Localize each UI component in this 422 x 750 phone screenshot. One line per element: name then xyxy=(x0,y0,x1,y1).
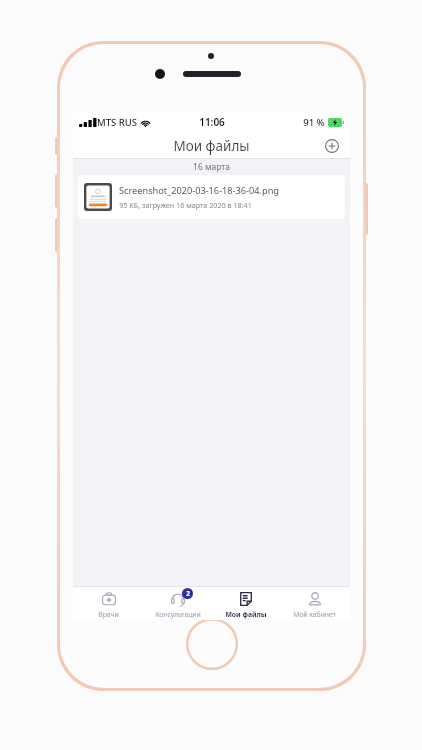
staticText: MTS RUS xyxy=(97,116,137,129)
staticText: Screenshot_2020-03-16-18-36-04.png xyxy=(119,184,279,197)
staticText: Мой кабинет xyxy=(293,610,336,619)
button[interactable]: Добавить файл xyxy=(320,134,344,158)
button[interactable]: Screenshot_2020-03-16-18-36-04.png xyxy=(78,175,345,219)
button[interactable]: 2 xyxy=(144,588,211,620)
button[interactable]: Мои файлы xyxy=(212,588,279,620)
staticText: 11:06 xyxy=(199,115,225,129)
staticText: 2 xyxy=(186,589,190,598)
staticText: 91 % xyxy=(303,116,325,129)
staticText: Консультации xyxy=(155,610,201,619)
staticText: Мои файлы xyxy=(225,610,267,619)
button[interactable]: Мой кабинет xyxy=(281,588,348,620)
staticText: Мои файлы xyxy=(173,137,250,155)
staticText: Врачи xyxy=(98,610,119,619)
staticText: 95 КБ, загружен 16 марта 2020 в 18:41 xyxy=(119,200,252,210)
button[interactable]: Врачи xyxy=(75,588,142,620)
staticText: 16 марта xyxy=(193,161,230,173)
